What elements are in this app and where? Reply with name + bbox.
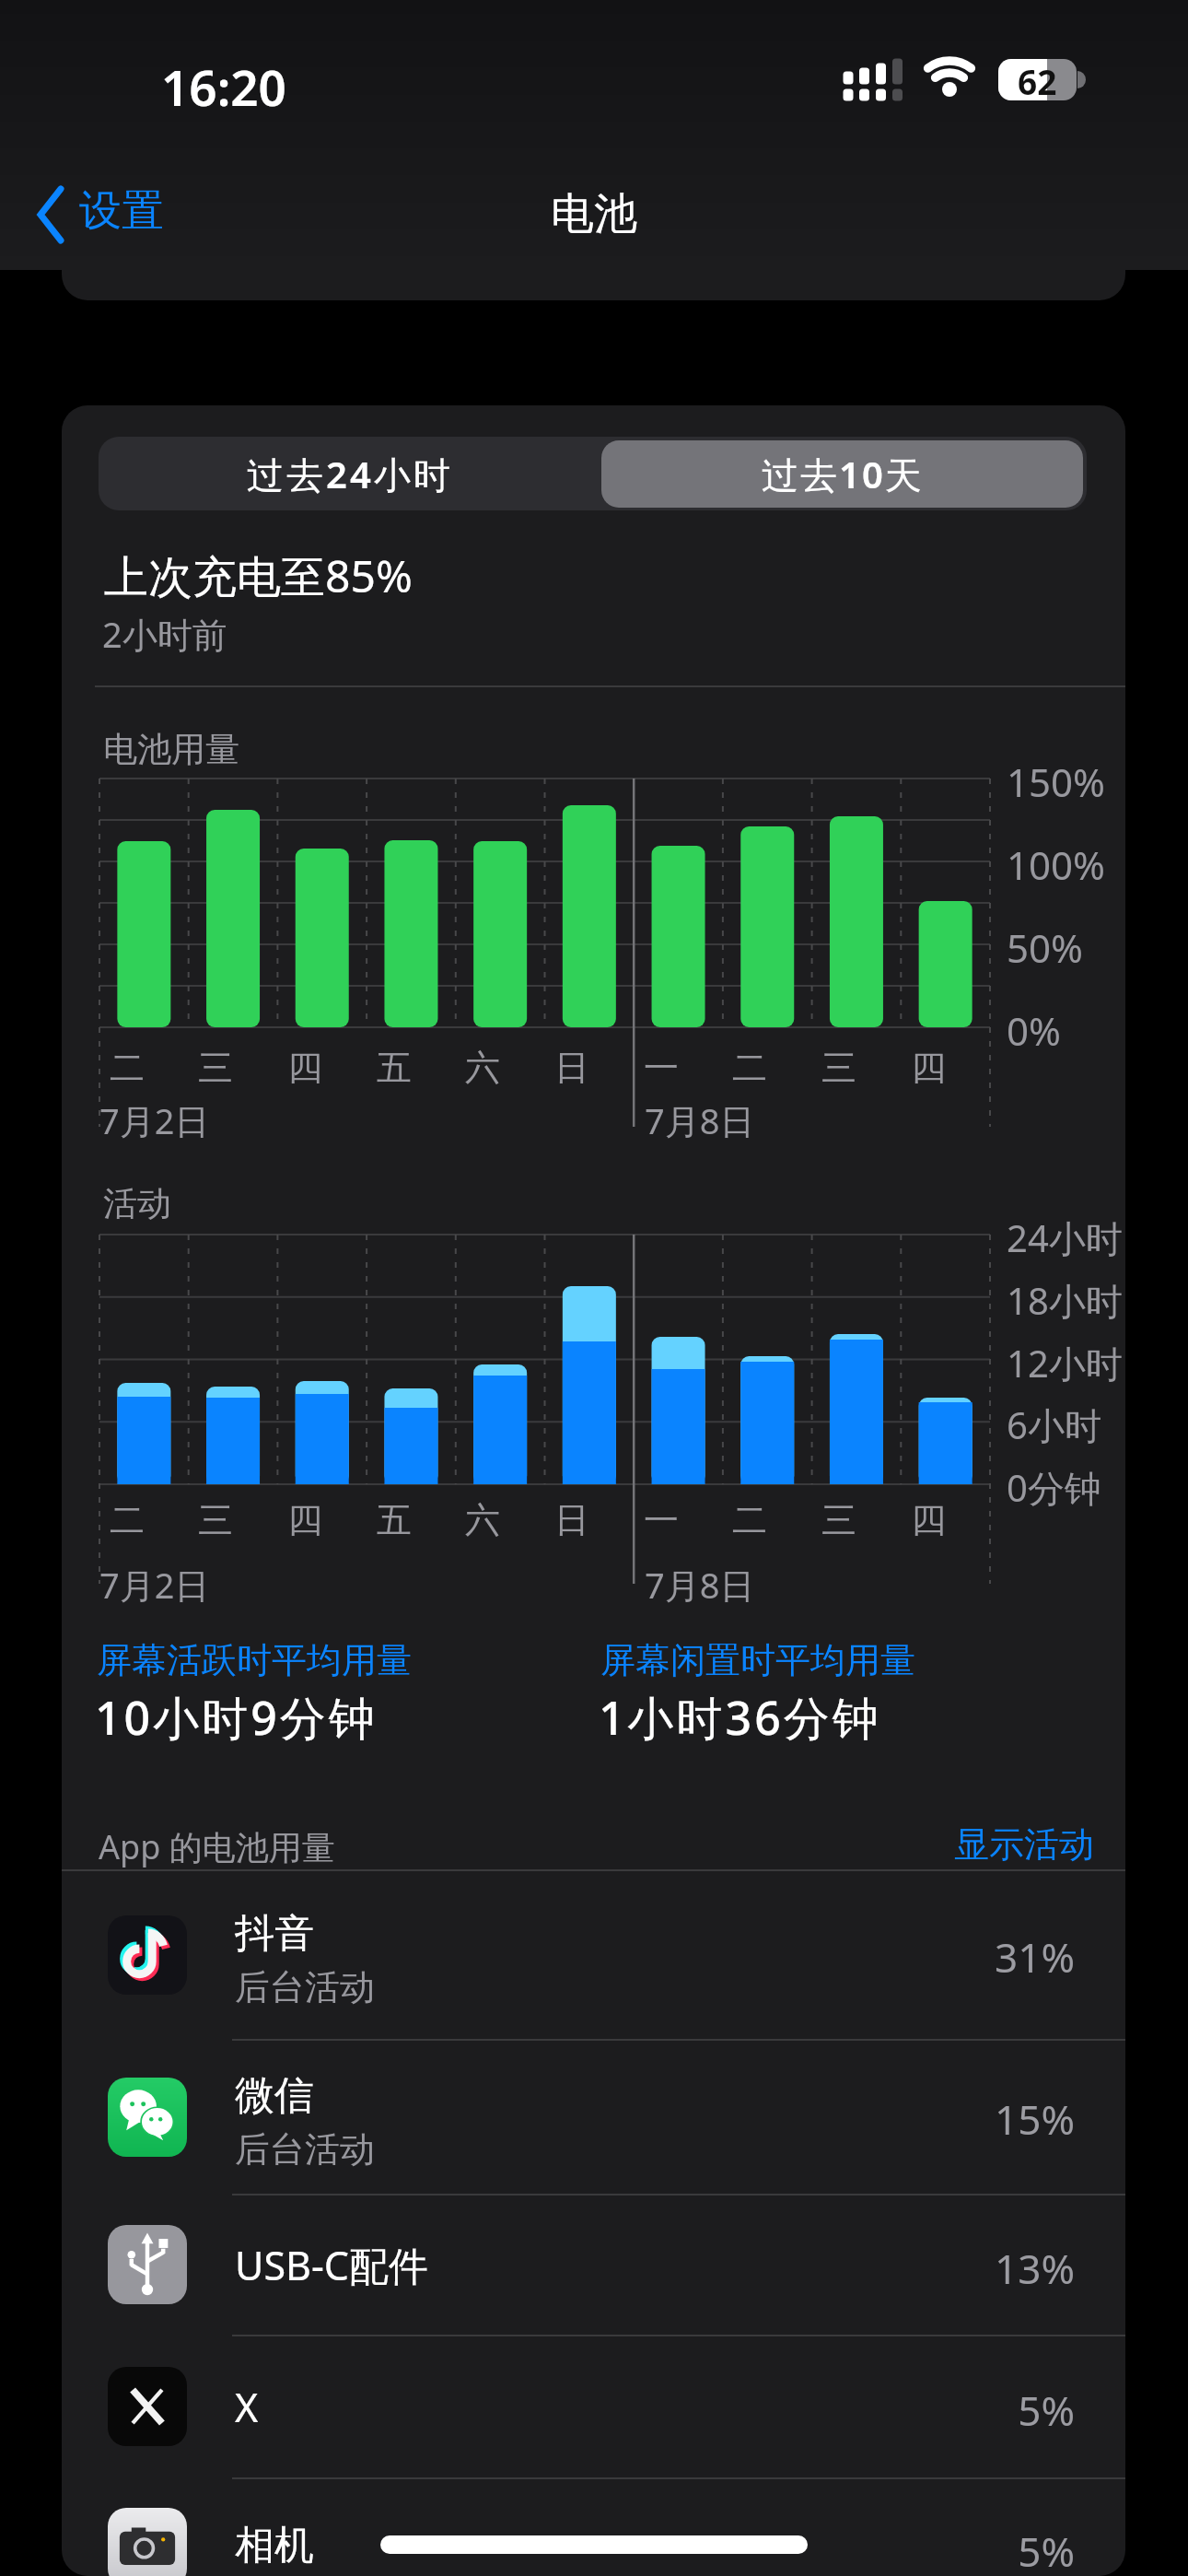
button[interactable]: 过去10天	[601, 437, 1083, 510]
staticText: 7月2日	[99, 1561, 210, 1609]
staticText: USB-C配件	[235, 2238, 429, 2292]
staticText: 设置	[79, 184, 164, 238]
button[interactable]: 屏幕活跃时平均用量	[97, 1638, 412, 1682]
staticText: 四	[287, 1498, 322, 1542]
staticText: 三	[821, 1046, 856, 1090]
staticText: 二	[110, 1046, 145, 1090]
staticText: 13%	[62, 2241, 1075, 2296]
staticText: 四	[911, 1498, 946, 1542]
staticText: App 的电池用量	[99, 1824, 335, 1869]
staticText: 2小时前	[102, 610, 227, 658]
button[interactable]	[601, 440, 1083, 508]
button[interactable]: 屏幕闲置时平均用量	[600, 1638, 915, 1682]
staticText: 微信	[235, 2071, 314, 2121]
staticText: 50%	[1007, 921, 1083, 974]
button[interactable]: 过去24小时	[99, 437, 601, 510]
staticText: 三	[198, 1046, 233, 1090]
staticText: 三	[198, 1498, 233, 1542]
staticText: 屏幕闲置时平均用量	[600, 1638, 915, 1682]
staticText: 62	[1018, 58, 1057, 100]
staticText: 日	[554, 1498, 589, 1542]
staticText: 7月8日	[645, 1096, 755, 1144]
staticText: 四	[287, 1046, 322, 1090]
staticText: 16:20	[161, 53, 286, 111]
button[interactable]: 设置	[79, 184, 164, 238]
button[interactable]	[62, 2040, 1125, 2195]
staticText: 后台活动	[235, 1965, 375, 2009]
staticText: 五	[377, 1498, 412, 1542]
staticText: 电池	[551, 187, 637, 241]
staticText: 上次充电至85%	[104, 545, 413, 606]
staticText: 7月2日	[99, 1096, 210, 1144]
staticText: 后台活动	[235, 2127, 375, 2172]
staticText: 18小时	[1007, 1275, 1123, 1326]
staticText: 1小时36分钟	[599, 1686, 881, 1749]
staticText: 二	[110, 1498, 145, 1542]
staticText: 三	[821, 1498, 856, 1542]
staticText: 抖音	[235, 1909, 314, 1959]
staticText: 一	[644, 1498, 679, 1542]
staticText: 12小时	[1007, 1338, 1123, 1388]
staticText: 过去24小时	[247, 449, 453, 499]
staticText: 屏幕活跃时平均用量	[97, 1638, 412, 1682]
staticText: 150%	[1007, 755, 1105, 808]
staticText: 显示活动	[891, 1822, 1094, 1867]
staticText: 10小时9分钟	[95, 1686, 378, 1749]
staticText: 31%	[62, 1929, 1075, 1985]
button[interactable]	[62, 2195, 1125, 2336]
staticText: 7月8日	[645, 1561, 755, 1609]
staticText: 一	[644, 1046, 679, 1090]
staticText: 六	[465, 1498, 500, 1542]
staticText: 日	[554, 1046, 589, 1090]
staticText: 五	[377, 1046, 412, 1090]
staticText: 5%	[62, 2383, 1075, 2438]
staticText: 二	[732, 1046, 767, 1090]
staticText: 相机	[235, 2521, 314, 2570]
staticText: 24小时	[1007, 1212, 1123, 1263]
staticText: 6小时	[1007, 1399, 1101, 1450]
staticText: 100%	[1007, 838, 1105, 891]
button[interactable]	[62, 1870, 1125, 2040]
staticText: 活动	[103, 1182, 171, 1225]
staticText: 5%	[62, 2523, 1075, 2576]
button[interactable]	[62, 2478, 1125, 2576]
staticText: 0%	[1007, 1004, 1061, 1057]
staticText: 电池用量	[103, 728, 239, 771]
staticText: 过去10天	[762, 449, 924, 499]
staticText: 二	[732, 1498, 767, 1542]
staticText: 四	[911, 1046, 946, 1090]
staticText: 15%	[62, 2091, 1075, 2147]
button[interactable]: 显示活动	[891, 1822, 1094, 1867]
staticText: 0分钟	[1007, 1462, 1101, 1513]
staticText: 六	[465, 1046, 500, 1090]
button[interactable]	[62, 2336, 1125, 2478]
staticText: X	[235, 2380, 259, 2434]
